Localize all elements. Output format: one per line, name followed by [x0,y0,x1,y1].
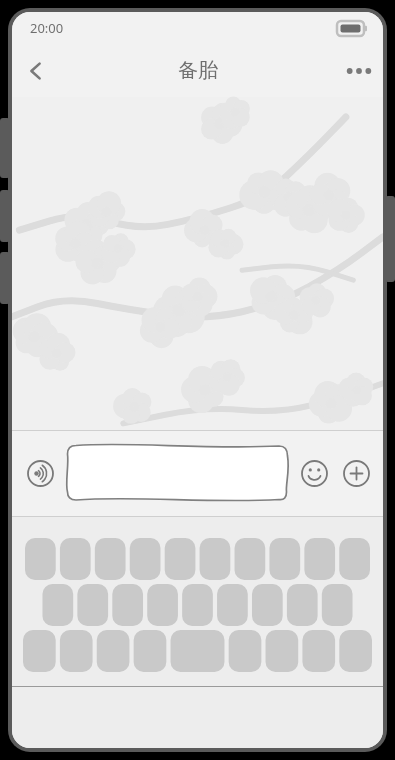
button[interactable]: Voice message [18,451,62,495]
button[interactable] [66,444,289,502]
button[interactable]: Back [12,47,60,95]
button[interactable]: Emoji [293,452,335,494]
staticText: 20:00 [30,19,64,37]
button[interactable]: Add attachment [335,452,377,494]
staticText: 备胎 [178,58,218,83]
button[interactable]: More options [335,47,383,95]
